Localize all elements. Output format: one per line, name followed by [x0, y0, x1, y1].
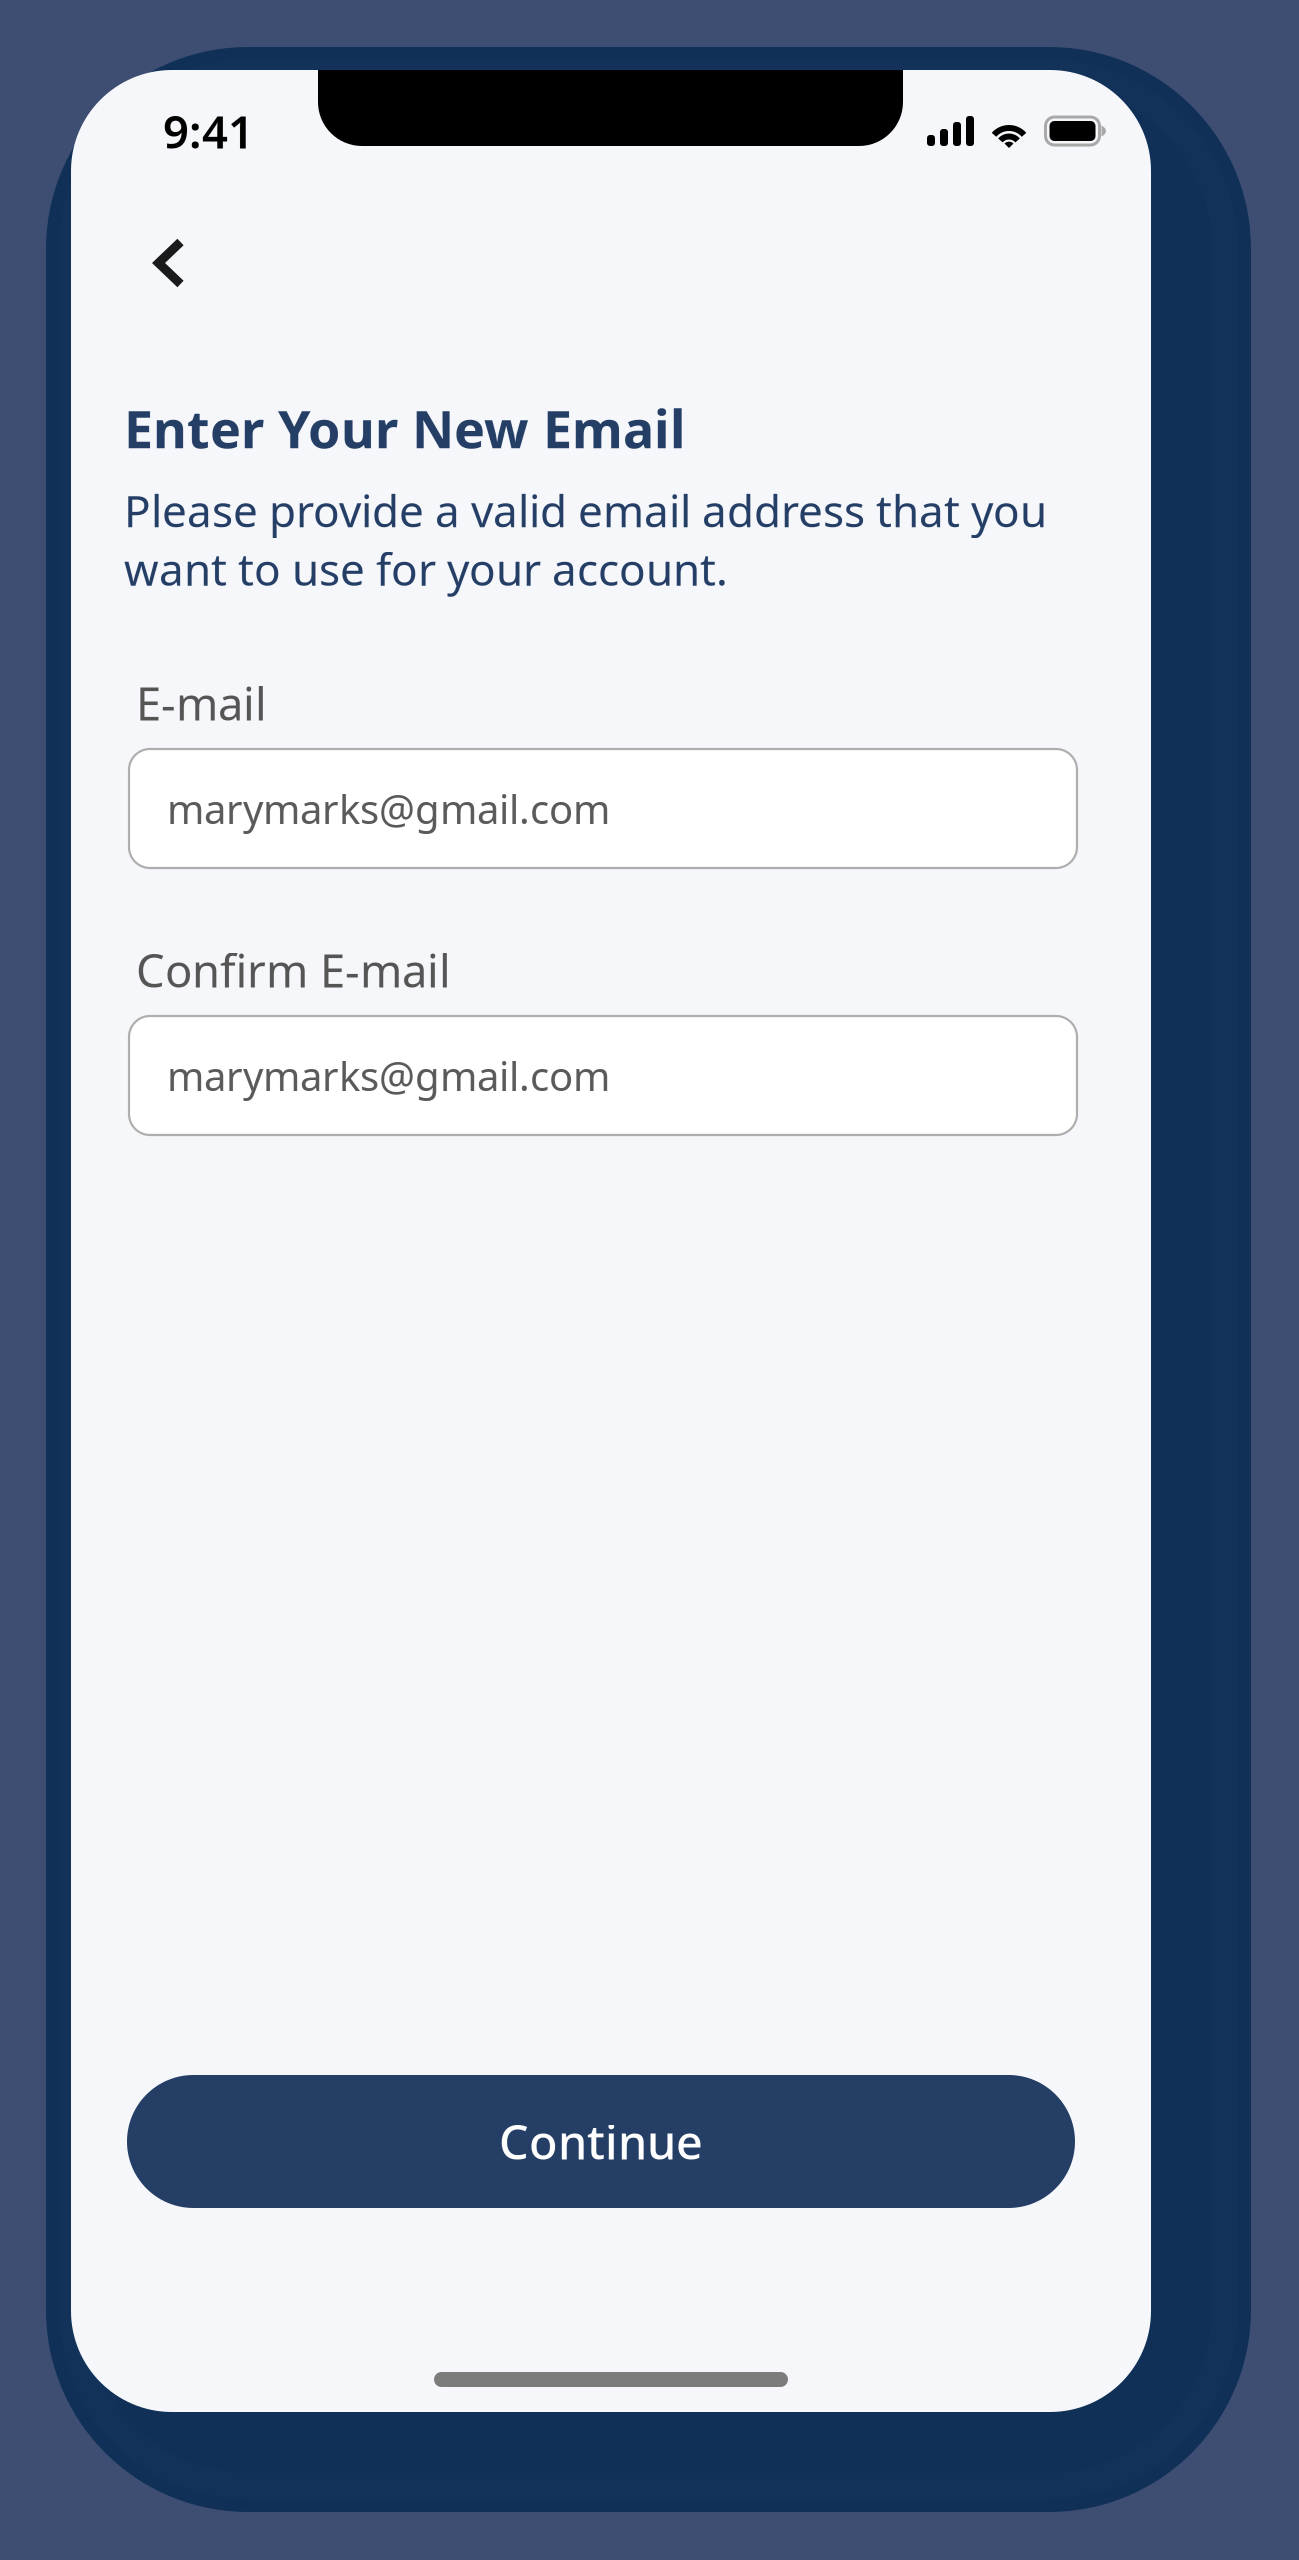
staticText: Please provide a valid email address tha…	[124, 481, 1047, 598]
button[interactable]: Back	[119, 213, 219, 313]
button[interactable]: Confirm E-mail	[129, 1016, 1077, 1135]
staticText: marymarks@gmail.com	[167, 1049, 610, 1102]
staticText: 9:41	[163, 101, 254, 161]
staticText: marymarks@gmail.com	[167, 782, 610, 835]
staticText: Enter Your New Email	[124, 393, 685, 463]
staticText: Continue	[499, 2110, 703, 2172]
button[interactable]: Continue	[127, 2075, 1075, 2208]
staticText: E-mail	[136, 673, 267, 733]
button[interactable]: E-mail	[129, 749, 1077, 868]
staticText: Confirm E-mail	[136, 940, 451, 1000]
